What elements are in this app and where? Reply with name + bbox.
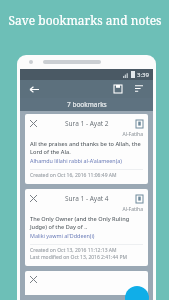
staticText: Alhamdu lillahi rabbi al-A'alameen(a) <box>30 157 122 164</box>
staticText: Save bookmarks and notes <box>8 12 162 28</box>
button[interactable]: Sort <box>132 82 146 96</box>
button[interactable]: Add bookmark <box>125 286 149 300</box>
staticText: Created on Oct 16, 2016 11:06:49 AM <box>30 172 117 179</box>
staticText: Al-Fatiha <box>30 206 143 213</box>
staticText: Sura 1 - Ayat 2 <box>65 119 109 128</box>
other: Delete <box>30 120 37 127</box>
staticText: Al-Fatiha <box>30 131 143 138</box>
staticText: Created on Oct 13, 2016 11:12:13 AM <box>30 247 117 254</box>
staticText: Maliki yawmi al'Dddeen(i) <box>30 232 95 239</box>
staticText: Last modified on Oct 13, 2016 2:41:44 PM <box>30 254 127 261</box>
button[interactable]: Delete <box>25 114 148 184</box>
other: Bookmark <box>136 120 143 128</box>
staticText: The Only Owner (and the Only Ruling Judg… <box>30 215 143 231</box>
button[interactable]: Delete <box>25 271 148 295</box>
staticText: Sura 1 - Ayat 4 <box>65 194 109 203</box>
button[interactable]: Save <box>111 82 125 96</box>
button[interactable]: Delete <box>25 189 148 266</box>
other: Bookmark <box>136 195 143 203</box>
button[interactable]: Back <box>27 82 41 96</box>
staticText: 3:39 <box>137 71 149 79</box>
staticText: All the praises and thanks be to Allah, … <box>30 140 143 156</box>
other: Delete <box>30 276 37 283</box>
staticText: 7 bookmarks <box>67 100 107 109</box>
other: Delete <box>30 195 37 202</box>
